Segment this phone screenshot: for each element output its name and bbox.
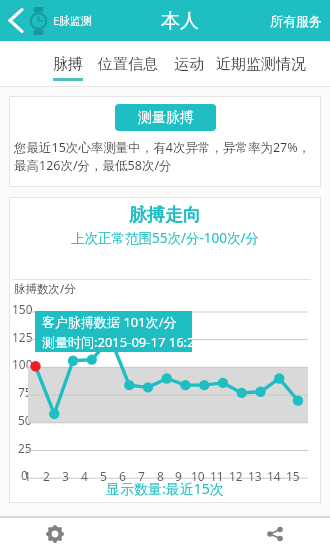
staticText: 3: [62, 468, 69, 484]
button[interactable]: 所有服务: [262, 0, 330, 41]
staticText: 脉搏数次/分: [14, 281, 76, 297]
staticText: 脉搏走向: [129, 204, 201, 227]
staticText: 100: [12, 356, 33, 372]
staticText: 25: [18, 440, 32, 456]
staticText: 5: [100, 468, 107, 484]
button[interactable]: 近期监测情况: [216, 41, 306, 81]
staticText: 近期监测情况: [216, 55, 306, 74]
staticText: 13: [248, 468, 262, 484]
staticText: 所有服务: [270, 13, 322, 29]
button[interactable]: 运动: [174, 41, 204, 81]
staticText: 位置信息: [98, 55, 158, 74]
button[interactable]: 位置信息: [98, 41, 158, 81]
staticText: 8: [157, 468, 164, 484]
button[interactable]: Share: [220, 518, 330, 550]
staticText: 客户脉搏数据 101次/分: [42, 313, 177, 331]
staticText: 运动: [174, 55, 204, 74]
staticText: 125: [12, 329, 33, 345]
staticText: 脉搏: [53, 55, 83, 74]
staticText: 75: [18, 384, 32, 400]
staticText: 10: [191, 468, 205, 484]
staticText: 150: [12, 301, 33, 317]
staticText: 2: [43, 468, 50, 484]
staticText: 6: [119, 468, 126, 484]
staticText: 0: [21, 467, 28, 483]
staticText: 9: [175, 468, 182, 484]
staticText: E脉监测: [53, 13, 93, 28]
button[interactable]: 脉搏: [53, 41, 83, 81]
staticText: 14: [267, 468, 281, 484]
staticText: 测量脉搏: [138, 109, 194, 127]
staticText: 15: [286, 468, 300, 484]
staticText: 50: [18, 412, 32, 428]
staticText: 11: [210, 468, 224, 484]
button[interactable]: Settings: [0, 518, 110, 550]
staticText: 1: [24, 468, 31, 484]
staticText: 12: [229, 468, 243, 484]
staticText: 您最近15次心率测量中，有4次异常，异常率为27%，最高126次/分，最低58次…: [14, 139, 315, 174]
staticText: 显示数量:最近15次: [106, 479, 224, 498]
staticText: 上次正常范围55次/分-100次/分: [71, 229, 260, 247]
staticText: 7: [138, 468, 145, 484]
staticText: 本人: [161, 9, 199, 33]
button[interactable]: 测量脉搏: [115, 104, 216, 131]
staticText: 测量时间:2015-09-17 16:28: [42, 333, 192, 351]
staticText: 4: [81, 468, 88, 484]
button[interactable]: E脉监测: [0, 0, 99, 41]
